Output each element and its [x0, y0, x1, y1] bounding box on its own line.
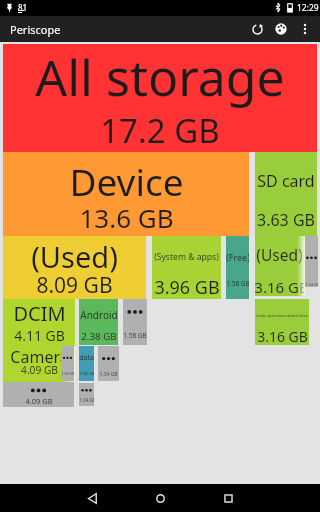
- staticText: Camera: [10, 346, 69, 368]
- staticText: todo: put more detail here: [256, 313, 308, 319]
- button[interactable]: Camera: [3, 346, 75, 382]
- staticText: 13.6 GB: [79, 200, 174, 235]
- staticText: 81: [18, 2, 28, 13]
- staticText: 4.11 GB: [14, 326, 65, 345]
- staticText: Android: [80, 308, 118, 322]
- staticText: 1.58 GB: [226, 279, 249, 288]
- button[interactable]: 1.34 GB: [98, 346, 119, 381]
- staticText: 17.2 GB: [100, 108, 220, 152]
- button[interactable]: 1.04 GB: [305, 236, 318, 287]
- button[interactable]: Recent apps: [208, 484, 248, 512]
- staticText: 2.38 GB: [81, 330, 117, 343]
- staticText: 1.04 GB: [305, 282, 318, 287]
- staticText: 4.09 GB: [21, 363, 58, 377]
- button[interactable]: todo: put more detail here: [255, 299, 309, 345]
- staticText: All storage: [35, 44, 285, 111]
- staticText: Periscope: [10, 22, 61, 37]
- staticText: data: [79, 353, 94, 363]
- staticText: 1.04 GB: [61, 371, 74, 376]
- staticText: (Used): [256, 244, 303, 265]
- staticText: (Used): [31, 237, 118, 276]
- button[interactable]: data: [79, 346, 94, 381]
- staticText: 3.16 GB: [257, 327, 308, 345]
- button[interactable]: (System & apps): [152, 236, 221, 299]
- staticText: (System & apps): [154, 251, 219, 263]
- button[interactable]: Home: [140, 484, 180, 512]
- button[interactable]: (Used): [255, 236, 305, 296]
- button[interactable]: SD card: [255, 152, 317, 236]
- button[interactable]: DCIM: [3, 299, 75, 346]
- staticText: SD card: [257, 170, 315, 192]
- button[interactable]: Android: [79, 299, 118, 345]
- staticText: 4.09 GB: [25, 396, 53, 406]
- staticText: DCIM: [13, 300, 66, 327]
- button[interactable]: Back: [72, 484, 112, 512]
- staticText: 3.96 GB: [154, 275, 220, 299]
- button[interactable]: All storage: [3, 44, 317, 152]
- staticText: 12:29: [297, 2, 319, 14]
- button[interactable]: 4.09 GB: [3, 382, 74, 407]
- button[interactable]: 1.04 GB: [61, 346, 74, 381]
- button[interactable]: (Used): [3, 236, 146, 299]
- staticText: 1.58 GB: [123, 331, 147, 340]
- staticText: 1.04 GB: [79, 397, 94, 403]
- staticText: 1.04 GB: [79, 371, 94, 377]
- staticText: 3.16 GB: [255, 277, 304, 296]
- button[interactable]: Refresh: [245, 16, 269, 42]
- button[interactable]: More options: [293, 16, 317, 42]
- staticText: (Free): [226, 251, 249, 263]
- button[interactable]: 1.58 GB: [123, 299, 147, 345]
- button[interactable]: (Free): [226, 236, 249, 299]
- staticText: 1.34 GB: [99, 371, 118, 378]
- staticText: Device: [69, 156, 184, 206]
- button[interactable]: Theme: [269, 16, 293, 42]
- staticText: 3.63 GB: [257, 209, 315, 231]
- button[interactable]: Device: [3, 152, 249, 236]
- staticText: 8.09 GB: [36, 271, 113, 299]
- button[interactable]: 1.04 GB: [79, 383, 94, 406]
